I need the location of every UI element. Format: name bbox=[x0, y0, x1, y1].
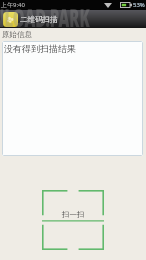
staticText: 扫一扫 bbox=[62, 210, 85, 219]
button[interactable]: 没有得到扫描结果 bbox=[2, 41, 143, 156]
button[interactable]: App icon bbox=[3, 12, 18, 27]
button[interactable]: 扫一扫 bbox=[42, 190, 104, 250]
staticText: 上午9:40 bbox=[1, 1, 25, 9]
staticText: DOWNLOAD.PARK bbox=[0, 1, 115, 28]
staticText: 53% bbox=[133, 1, 145, 9]
staticText: 没有得到扫描结果 bbox=[4, 43, 76, 54]
staticText: 原始信息 bbox=[2, 30, 32, 39]
staticText: 二维码扫描 bbox=[20, 15, 58, 24]
